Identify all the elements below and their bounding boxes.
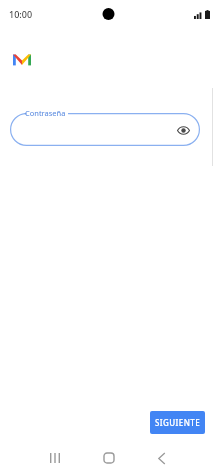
button[interactable]: Inicio <box>96 445 122 471</box>
button[interactable]: Atrás <box>149 445 175 471</box>
button[interactable]: Mostrar contraseña <box>175 122 191 138</box>
button[interactable]: Recientes <box>42 445 68 471</box>
staticText: SIGUIENTE <box>155 417 200 428</box>
button[interactable]: Contraseña <box>10 108 200 146</box>
staticText: 10:00 <box>9 8 33 20</box>
staticText: Contraseña <box>25 108 66 118</box>
button[interactable]: SIGUIENTE <box>150 411 205 434</box>
